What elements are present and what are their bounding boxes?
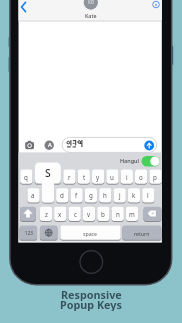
staticText: q (24, 173, 28, 181)
staticText: h (103, 191, 107, 199)
button[interactable]: q (20, 170, 32, 184)
button[interactable]: d (56, 188, 68, 202)
staticText: S (45, 166, 51, 180)
button[interactable]: m (126, 207, 138, 221)
staticText: o (139, 173, 143, 181)
button[interactable] (42, 188, 54, 202)
button[interactable]: u (106, 170, 118, 184)
staticText: j (119, 191, 121, 199)
button[interactable] (40, 226, 58, 240)
button[interactable] (24, 140, 35, 151)
staticText: A (48, 141, 52, 149)
button[interactable] (35, 170, 47, 184)
staticText: y (96, 173, 100, 181)
staticText: Responsive (61, 287, 122, 301)
button[interactable] (44, 140, 55, 151)
button[interactable] (49, 170, 61, 184)
button[interactable]: f (70, 188, 82, 202)
button[interactable]: h (99, 188, 111, 202)
staticText: return (134, 230, 150, 237)
staticText: Kate (85, 12, 97, 19)
staticText: m (129, 210, 135, 218)
staticText: l (147, 191, 149, 199)
staticText: p (153, 173, 157, 181)
staticText: 123 (25, 230, 33, 236)
button[interactable]: c (69, 207, 81, 221)
staticText: Hangul (120, 157, 140, 164)
button[interactable]: p (149, 170, 161, 184)
button[interactable]: g (85, 188, 97, 202)
staticText: Popup Keys (60, 297, 122, 311)
button[interactable]: b (97, 207, 109, 221)
button[interactable]: v (83, 207, 95, 221)
staticText: x (58, 210, 62, 218)
button[interactable]: space (60, 226, 120, 240)
staticText: space (83, 230, 98, 237)
button[interactable]: x (54, 207, 66, 221)
button[interactable]: 123 (20, 226, 38, 240)
staticText: a (31, 191, 35, 199)
staticText: z (45, 210, 48, 218)
button[interactable] (144, 207, 162, 221)
button[interactable]: r (63, 170, 75, 184)
button[interactable]: return (122, 226, 161, 240)
staticText: d (60, 191, 64, 199)
staticText: u (110, 173, 114, 181)
button[interactable]: l (142, 188, 154, 202)
staticText: i (126, 173, 128, 181)
button[interactable] (144, 140, 156, 152)
staticText: g (89, 191, 93, 199)
button[interactable]: j (114, 188, 126, 202)
button[interactable]: a (27, 188, 39, 202)
staticText: t (83, 173, 86, 181)
staticText: n (116, 210, 120, 218)
staticText: KB (88, 0, 94, 5)
button[interactable]: z (40, 207, 52, 221)
button[interactable]: t (78, 170, 90, 184)
staticText: b (101, 210, 105, 218)
button[interactable] (142, 156, 160, 166)
button[interactable] (19, 1, 30, 14)
button[interactable]: o (135, 170, 147, 184)
button[interactable] (20, 207, 36, 221)
staticText: c (74, 210, 77, 218)
button[interactable]: i (121, 170, 133, 184)
button[interactable] (80, 251, 103, 274)
button[interactable]: y (92, 170, 104, 184)
button[interactable] (151, 0, 161, 10)
staticText: r (68, 173, 71, 181)
button[interactable]: k (128, 188, 140, 202)
staticText: k (132, 191, 136, 199)
button[interactable]: n (112, 207, 124, 221)
button[interactable] (62, 137, 157, 152)
staticText: v (87, 210, 91, 218)
staticText: f (75, 191, 78, 199)
